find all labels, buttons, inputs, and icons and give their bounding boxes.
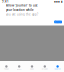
staticText: Continue xyxy=(54,18,62,25)
button[interactable]: Arcade xyxy=(38,63,51,70)
staticText: Games xyxy=(17,68,22,70)
staticText: ▪▪▪ ▮ xyxy=(54,0,62,3)
staticText: your location while xyxy=(6,8,34,12)
button[interactable]: Games xyxy=(13,63,26,70)
button[interactable]: Continue xyxy=(54,20,62,23)
staticText: Allow “Journal” to use xyxy=(6,4,38,7)
button[interactable]: Apps xyxy=(26,63,38,70)
staticText: Search xyxy=(55,68,61,70)
staticText: 9:41 xyxy=(2,0,9,3)
staticText: Arcade xyxy=(42,68,48,70)
button[interactable]: Search xyxy=(51,63,64,70)
staticText: Today xyxy=(4,68,9,70)
button[interactable]: Today xyxy=(0,63,13,70)
staticText: you are using the app? xyxy=(6,13,38,16)
staticText: Apps xyxy=(30,68,34,70)
